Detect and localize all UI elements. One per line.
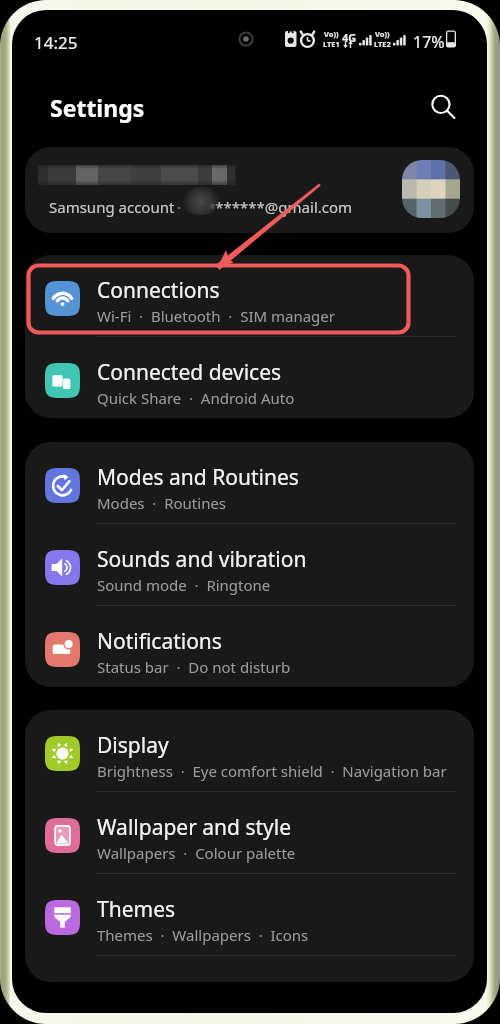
staticText: Connections bbox=[97, 276, 220, 305]
staticText: Quick Share · Android Auto bbox=[97, 388, 295, 408]
button[interactable]: Connections bbox=[25, 255, 474, 336]
staticText: LTE2 bbox=[374, 39, 391, 49]
staticText: Modes and Routines bbox=[97, 463, 299, 492]
button[interactable]: Search bbox=[421, 85, 465, 129]
staticText: Themes · Wallpapers · Icons bbox=[97, 925, 309, 945]
staticText: Samsung account bbox=[49, 197, 175, 217]
staticText: Notifications bbox=[97, 627, 222, 656]
staticText: LTE1 bbox=[323, 39, 340, 49]
staticText: Connected devices bbox=[97, 358, 282, 387]
staticText: Vo)) bbox=[375, 29, 390, 39]
button[interactable]: Modes and Routines bbox=[25, 442, 474, 523]
button[interactable]: Wallpaper and style bbox=[25, 792, 474, 873]
staticText: Vo)) bbox=[324, 29, 339, 39]
staticText: Status bar · Do not disturb bbox=[97, 657, 291, 677]
staticText: Brightness · Eye comfort shield · Naviga… bbox=[97, 761, 447, 781]
staticText: 17% bbox=[413, 31, 445, 53]
staticText: Modes · Routines bbox=[97, 493, 227, 513]
button[interactable]: Themes bbox=[25, 874, 474, 955]
button[interactable]: Notifications bbox=[25, 606, 474, 687]
staticText: 4G bbox=[342, 30, 357, 45]
staticText: Wi-Fi · Bluetooth · SIM manager bbox=[97, 306, 335, 326]
staticText: Wallpaper and style bbox=[97, 813, 292, 842]
staticText: Sound mode · Ringtone bbox=[97, 575, 271, 595]
staticText: Sounds and vibration bbox=[97, 545, 307, 574]
staticText: Display bbox=[97, 731, 169, 760]
staticText: 14:25 bbox=[34, 31, 78, 54]
button[interactable]: Samsung account bbox=[25, 147, 474, 233]
staticText: Settings bbox=[50, 92, 145, 123]
staticText: *******@gmail.com bbox=[207, 197, 353, 217]
staticText: · bbox=[177, 197, 182, 217]
button[interactable]: Display bbox=[25, 710, 474, 791]
staticText: Wallpapers · Colour palette bbox=[97, 843, 296, 863]
button[interactable]: Sounds and vibration bbox=[25, 524, 474, 605]
staticText: Themes bbox=[97, 895, 176, 924]
button[interactable]: Connected devices bbox=[25, 337, 474, 418]
